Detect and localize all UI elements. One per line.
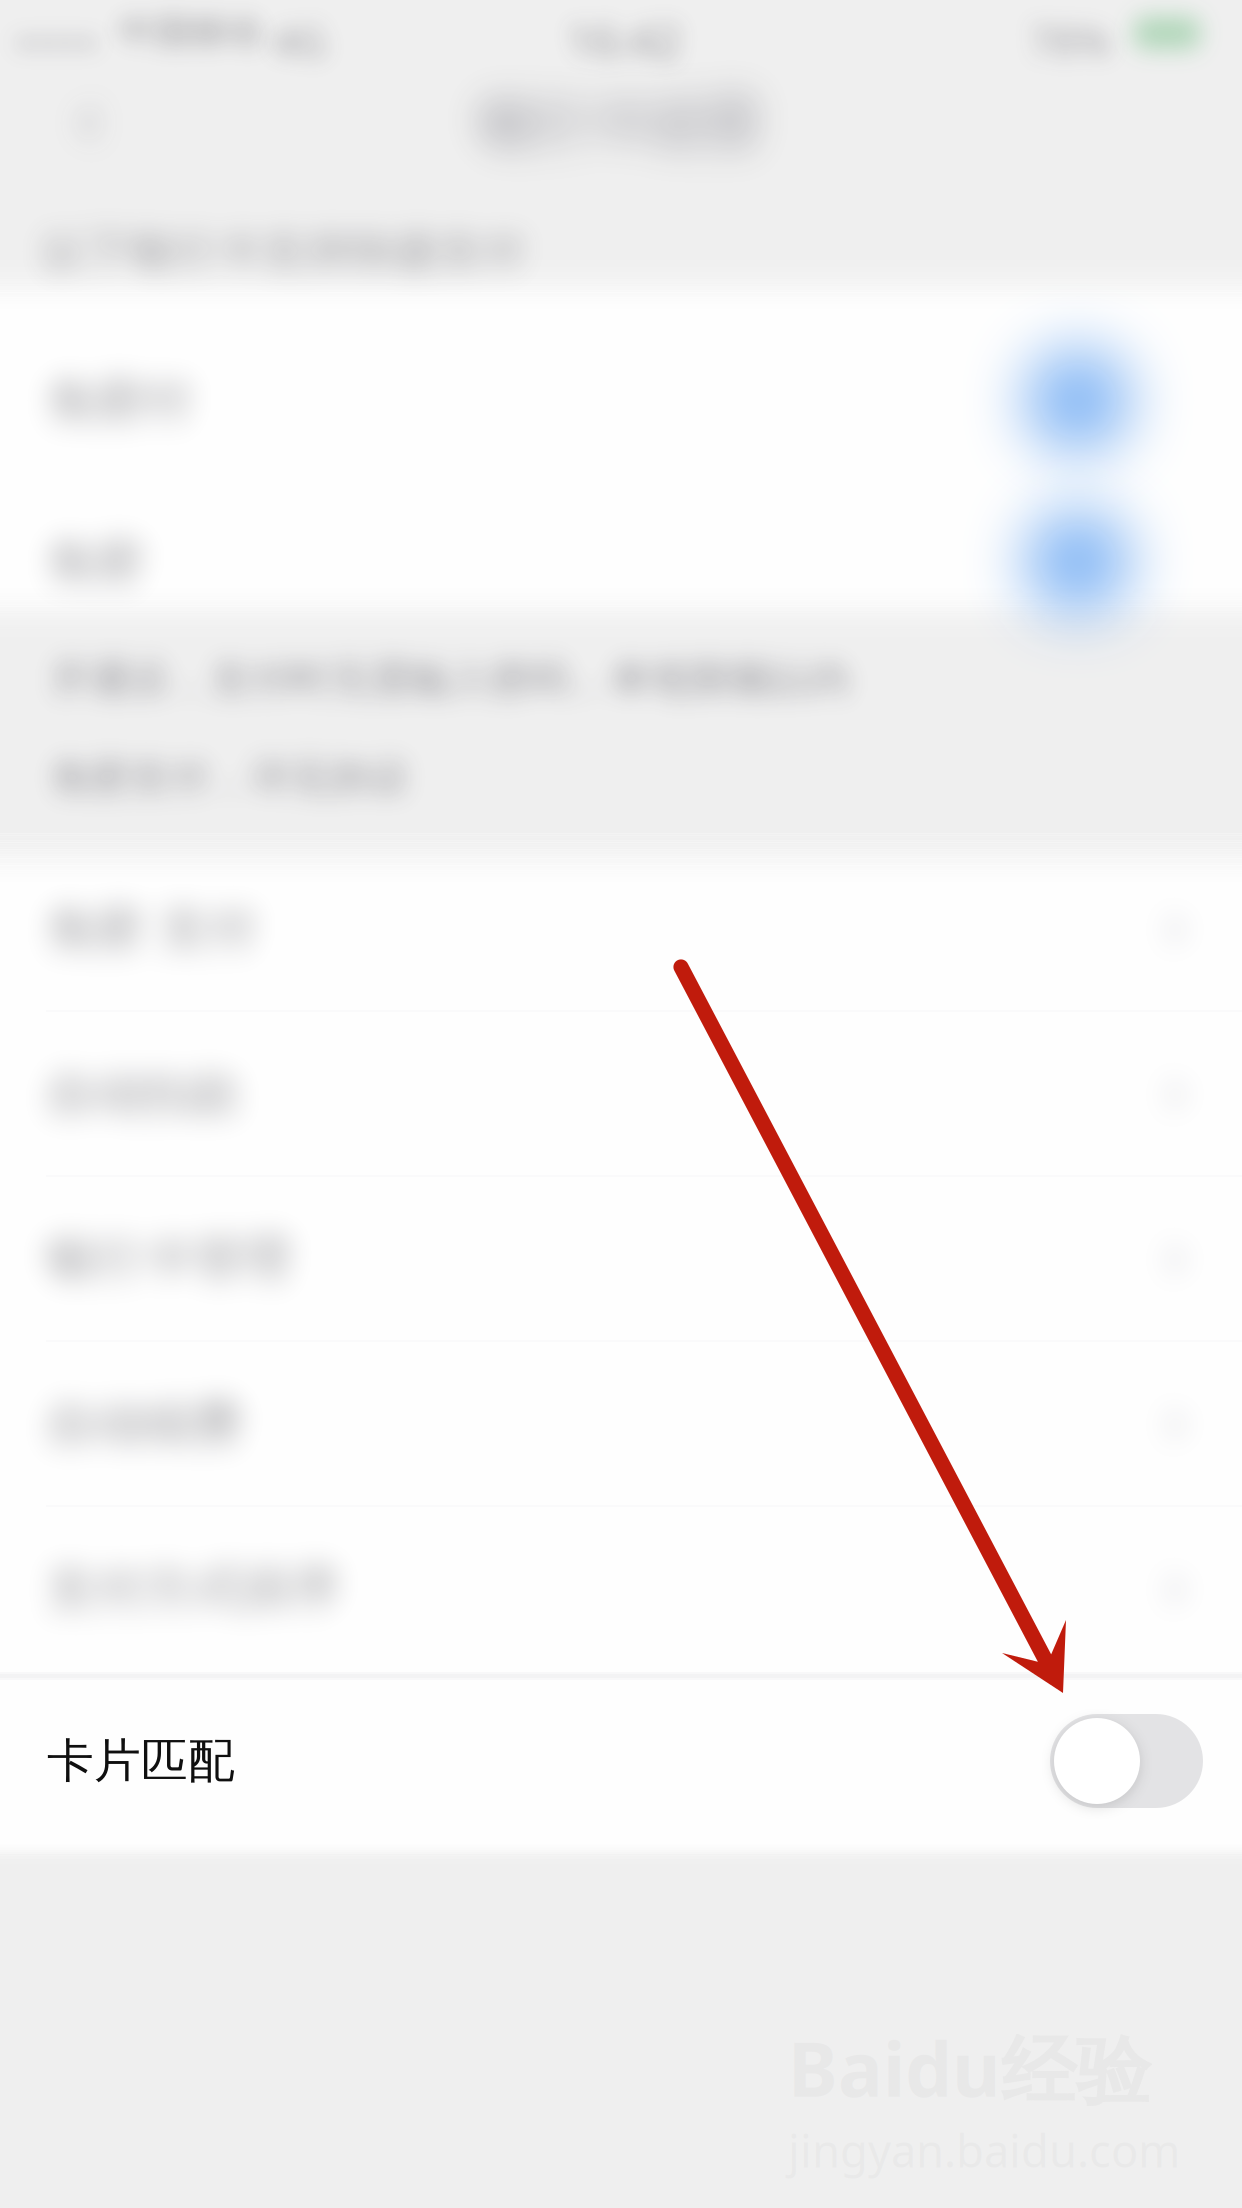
staticText: 16:42 — [232, 10, 348, 70]
button[interactable]: 免密 支付 — [0, 847, 1242, 1010]
staticText: Baidu经验 — [788, 2018, 1151, 2118]
button[interactable]: 自动扣款 — [0, 1012, 1242, 1175]
button[interactable]: 支付方式排序 — [0, 1507, 1242, 1670]
button[interactable]: 卡片匹配 — [0, 1682, 1242, 1840]
button[interactable]: 银行卡管理 — [0, 1177, 1242, 1340]
button[interactable]: 免密付 — [0, 320, 1242, 481]
staticText: 卡片匹配 — [47, 1732, 235, 1790]
button[interactable]: 免密 — [0, 481, 1242, 642]
staticText: 4G — [0, 12, 53, 69]
button[interactable]: 自动续费 — [0, 1342, 1242, 1505]
